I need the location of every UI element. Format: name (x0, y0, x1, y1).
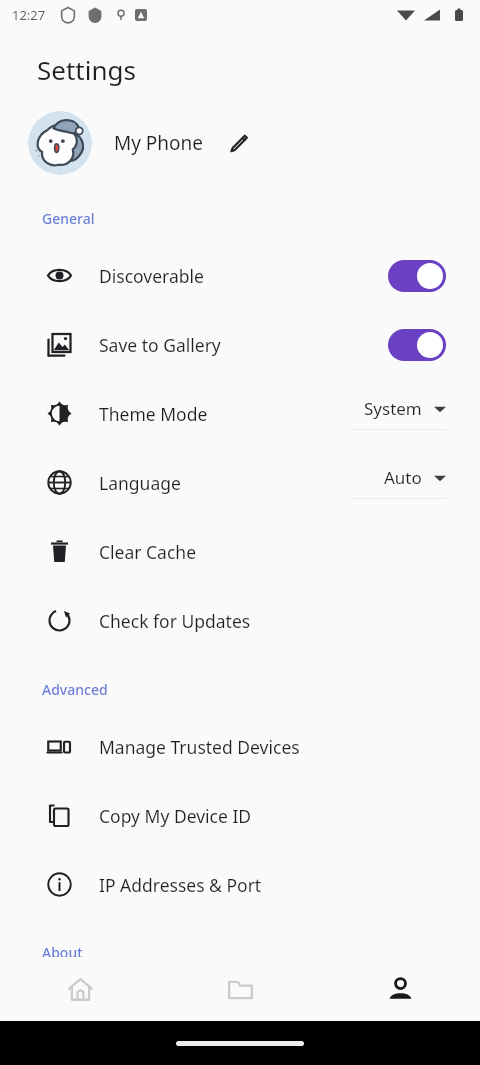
button[interactable]: Edit device name (220, 125, 256, 161)
staticText: Settings (37, 52, 136, 87)
staticText: Auto (384, 466, 422, 489)
staticText: Save to Gallery (99, 333, 221, 357)
button[interactable]: Discoverable (0, 241, 480, 310)
button[interactable]: Theme Mode (0, 379, 480, 448)
button[interactable]: Profile (320, 957, 480, 1021)
staticText: Check for Updates (99, 609, 251, 633)
button[interactable]: Copy My Device ID (0, 781, 480, 850)
button[interactable]: Clear Cache (0, 517, 480, 586)
staticText: Clear Cache (99, 540, 197, 564)
button[interactable]: Language (0, 448, 480, 517)
button[interactable]: Manage Trusted Devices (0, 712, 480, 781)
staticText: Manage Trusted Devices (99, 735, 300, 759)
button[interactable]: IP Addresses & Port (0, 850, 480, 919)
button[interactable]: Check for Updates (0, 586, 480, 655)
staticText: Discoverable (99, 264, 204, 288)
staticText: General (42, 209, 95, 228)
staticText: Theme Mode (99, 402, 208, 426)
staticText: System (364, 397, 422, 420)
button[interactable]: Save to Gallery (0, 310, 480, 379)
button[interactable]: Home (0, 957, 160, 1021)
button[interactable]: Files (160, 957, 320, 1021)
button[interactable]: Toggle on (388, 260, 446, 292)
button[interactable]: Toggle on (388, 329, 446, 361)
button[interactable]: Auto (350, 466, 446, 499)
staticText: About (42, 943, 83, 957)
staticText: Advanced (42, 680, 108, 699)
staticText: 12:27 (12, 6, 46, 24)
staticText: Language (99, 471, 181, 495)
staticText: IP Addresses & Port (99, 873, 262, 897)
staticText: Copy My Device ID (99, 804, 252, 828)
button[interactable]: Avatar (28, 111, 92, 175)
button[interactable]: System (350, 397, 446, 430)
staticText: My Phone (114, 130, 204, 156)
